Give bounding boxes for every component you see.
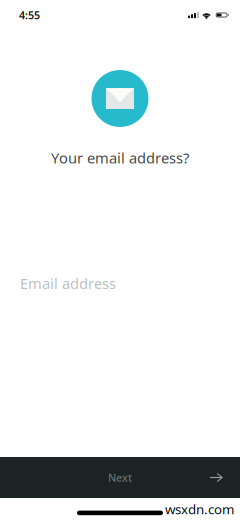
staticText: Email address: [20, 273, 116, 293]
button[interactable]: Next: [0, 457, 240, 498]
staticText: Next: [108, 470, 132, 485]
staticText: wsxdn.com: [165, 500, 234, 518]
staticText: Your email address?: [51, 148, 189, 167]
staticText: 4:55: [19, 8, 40, 22]
